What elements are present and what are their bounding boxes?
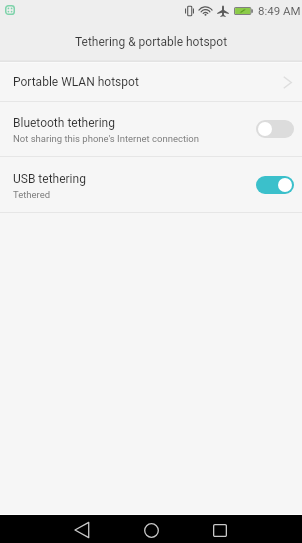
button[interactable]: Toggle off: [256, 120, 294, 138]
button[interactable]: Back: [68, 516, 96, 543]
staticText: 8:49 AM: [258, 4, 301, 17]
button[interactable]: Recents: [206, 516, 234, 543]
button[interactable]: USB tethering: [0, 157, 302, 213]
staticText: Not sharing this phone's Internet connec…: [13, 133, 200, 144]
staticText: Portable WLAN hotspot: [13, 75, 139, 89]
staticText: Tethering & portable hotspot: [75, 35, 228, 49]
staticText: Bluetooth tethering: [13, 116, 115, 130]
button[interactable]: Bluetooth tethering: [0, 102, 302, 157]
button[interactable]: Toggle on: [256, 176, 294, 194]
staticText: Tethered: [13, 189, 51, 200]
button[interactable]: Home: [137, 516, 165, 543]
button[interactable]: Portable WLAN hotspot: [0, 63, 302, 102]
staticText: USB tethering: [13, 172, 86, 186]
